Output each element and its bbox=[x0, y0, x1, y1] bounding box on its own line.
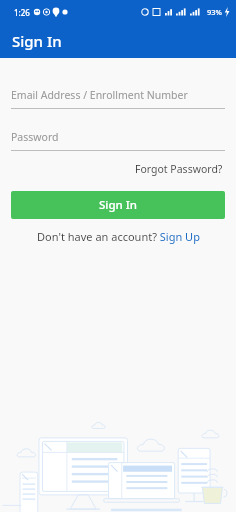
button[interactable]: Password bbox=[11, 130, 225, 151]
staticText: Password bbox=[11, 130, 59, 144]
button[interactable]: Forgot Password? bbox=[133, 160, 225, 178]
staticText: Don't have an account? Sign Up bbox=[37, 229, 200, 244]
staticText: Forgot Password? bbox=[135, 162, 223, 176]
button[interactable]: Sign In bbox=[11, 191, 225, 219]
staticText: 93% bbox=[207, 7, 222, 17]
staticText: Sign In bbox=[12, 31, 62, 51]
button[interactable]: Email Address / Enrollment Number bbox=[11, 88, 225, 109]
staticText: Sign In bbox=[99, 197, 138, 213]
staticText: 1:26 bbox=[14, 7, 30, 18]
staticText: Email Address / Enrollment Number bbox=[11, 88, 188, 102]
button[interactable]: Don't have an account? Sign Up bbox=[37, 229, 200, 244]
